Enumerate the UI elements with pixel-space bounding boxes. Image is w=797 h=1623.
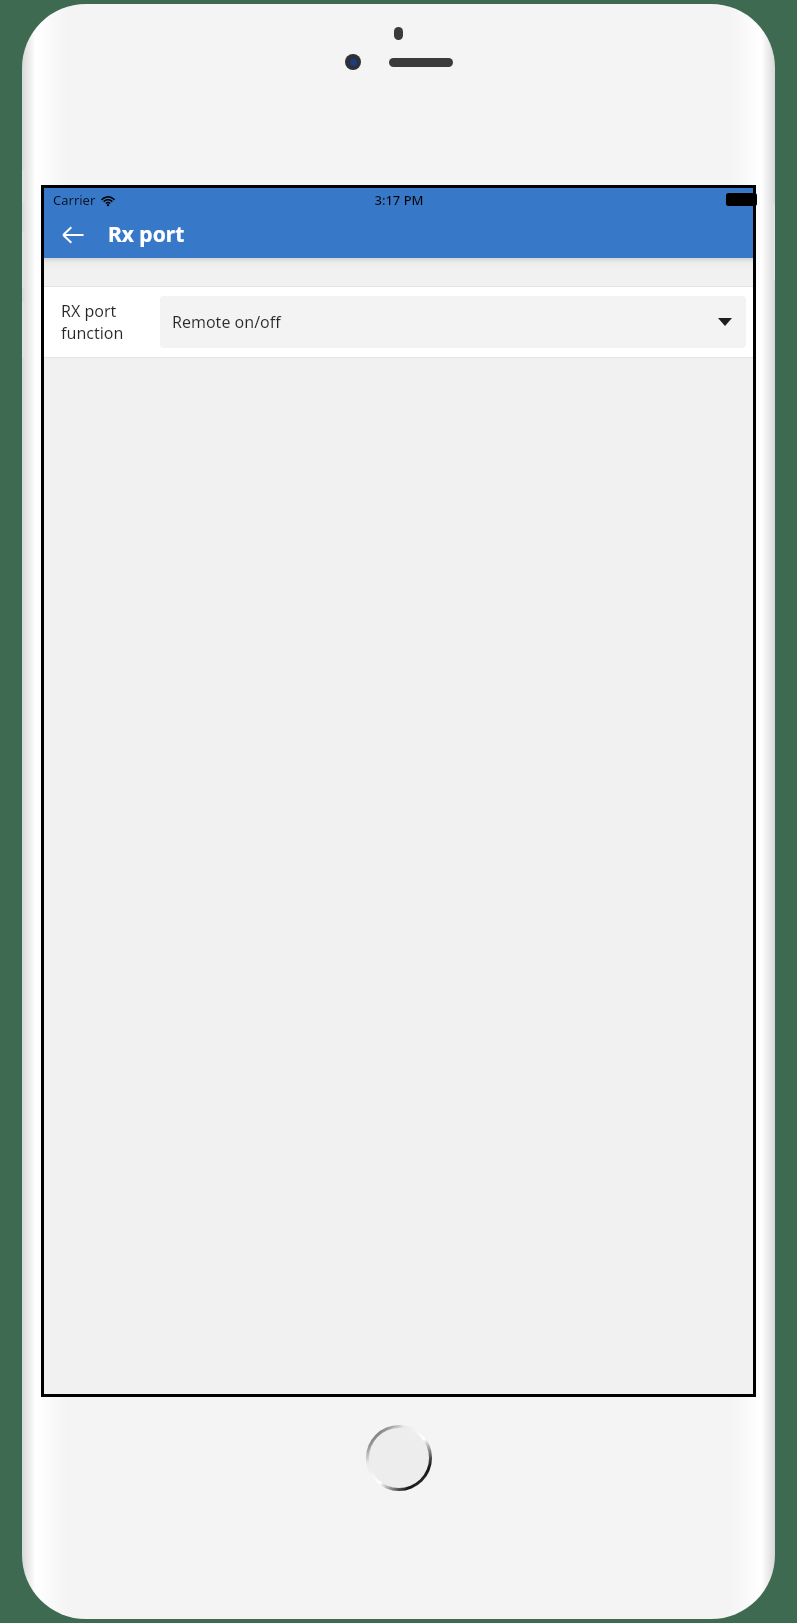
staticText: 3:17 PM xyxy=(374,191,424,209)
button[interactable]: Remote on/off xyxy=(160,296,746,348)
staticText: RX port function xyxy=(61,300,149,344)
button[interactable]: RX port function xyxy=(44,287,753,357)
staticText: Rx port xyxy=(108,220,185,249)
staticText: Remote on/off xyxy=(172,311,281,333)
staticText: Carrier xyxy=(53,191,96,209)
button[interactable]: Back xyxy=(51,213,95,257)
